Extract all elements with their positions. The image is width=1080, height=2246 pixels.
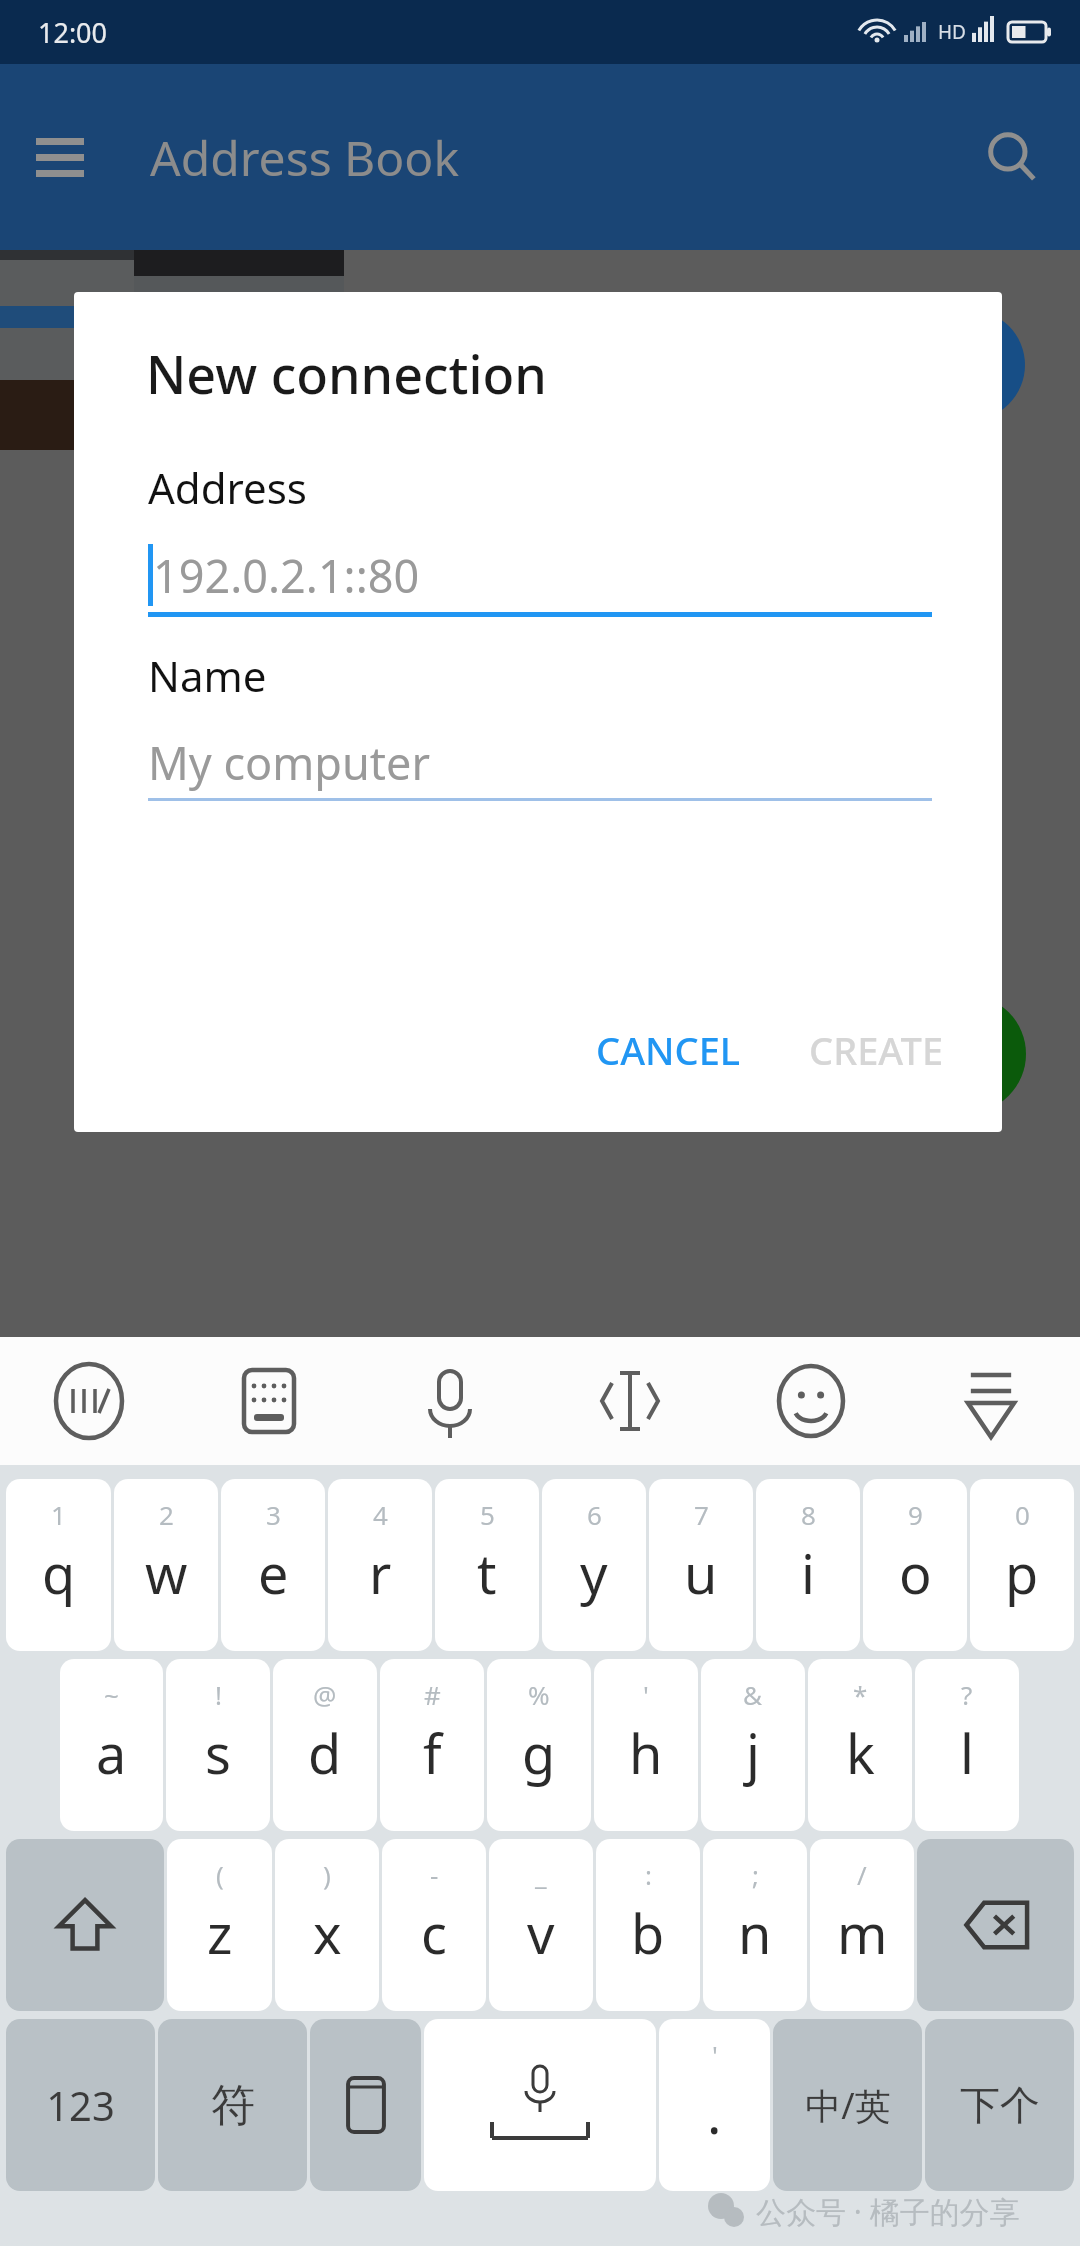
button[interactable]: Hide keyboard	[936, 1346, 1046, 1456]
staticText: @	[313, 1677, 337, 1712]
button[interactable]: %	[487, 1659, 591, 1831]
button[interactable]: (	[167, 1839, 272, 2011]
staticText: g	[522, 1716, 556, 1790]
button[interactable]: Emoji	[756, 1346, 866, 1456]
staticText: r	[369, 1536, 392, 1610]
staticText: 4	[373, 1497, 388, 1532]
staticText: j	[746, 1716, 760, 1790]
staticText: 9	[908, 1497, 923, 1532]
staticText: 123	[46, 2078, 115, 2132]
button[interactable]: 下个	[925, 2019, 1074, 2191]
button[interactable]: 0	[970, 1479, 1074, 1651]
button[interactable]: ;	[703, 1839, 807, 2011]
staticText: 192.0.2.1::80	[153, 545, 420, 606]
staticText: v	[527, 1896, 555, 1970]
button[interactable]: 7	[649, 1479, 753, 1651]
button[interactable]: '	[594, 1659, 698, 1831]
staticText: q	[42, 1536, 76, 1610]
staticText: 8	[801, 1497, 816, 1532]
staticText: z	[207, 1896, 233, 1970]
staticText: %	[528, 1677, 550, 1712]
button[interactable]: Add connection	[908, 995, 1026, 1113]
button[interactable]: Shift	[6, 1839, 164, 2011]
staticText: '	[712, 2037, 718, 2072]
button[interactable]: -	[382, 1839, 486, 2011]
button[interactable]: 1	[6, 1479, 111, 1651]
staticText: '	[643, 1677, 649, 1712]
staticText: c	[421, 1896, 447, 1970]
staticText: 公众号 · 橘子的分享	[756, 2191, 1020, 2232]
staticText: u	[684, 1536, 718, 1610]
staticText: 0	[1015, 1497, 1030, 1532]
staticText: 5	[480, 1497, 495, 1532]
button[interactable]: 9	[863, 1479, 967, 1651]
button[interactable]: @	[273, 1659, 377, 1831]
staticText: 2	[159, 1497, 174, 1532]
button[interactable]: Input method	[34, 1346, 144, 1456]
staticText: 7	[694, 1497, 709, 1532]
staticText: )	[323, 1857, 331, 1892]
staticText: b	[631, 1896, 665, 1970]
staticText: HD	[938, 19, 966, 45]
button[interactable]: Voice input	[395, 1346, 505, 1456]
staticText: New connection	[146, 338, 547, 409]
staticText: *	[853, 1677, 868, 1712]
staticText: &	[743, 1677, 763, 1712]
button[interactable]: 中/英	[773, 2019, 922, 2191]
staticText: 下个	[960, 2080, 1040, 2130]
button[interactable]: 2	[114, 1479, 218, 1651]
button[interactable]: 5	[435, 1479, 539, 1651]
staticText: ?	[961, 1677, 973, 1712]
staticText: Address	[148, 459, 307, 516]
button[interactable]: Keyboard layout	[214, 1346, 324, 1456]
button[interactable]: Language	[310, 2019, 421, 2191]
button[interactable]: Edit cursor	[575, 1346, 685, 1456]
button[interactable]: #	[380, 1659, 484, 1831]
staticText: w	[145, 1536, 188, 1610]
button[interactable]: CREATE	[785, 1006, 968, 1094]
staticText: ;	[752, 1857, 759, 1892]
staticText: e	[258, 1536, 289, 1610]
staticText: .	[707, 2076, 722, 2150]
staticText: 1	[51, 1497, 66, 1532]
button[interactable]: 8	[756, 1479, 860, 1651]
staticText: h	[629, 1716, 663, 1790]
button[interactable]: ~	[60, 1659, 163, 1831]
staticText: Address Book	[150, 125, 460, 190]
staticText: o	[899, 1536, 932, 1610]
button[interactable]: Menu	[24, 121, 96, 193]
button[interactable]: 符	[158, 2019, 307, 2191]
button[interactable]: /	[810, 1839, 914, 2011]
button[interactable]: Space	[424, 2019, 656, 2191]
staticText: _	[535, 1857, 547, 1892]
staticText: y	[580, 1536, 608, 1610]
button[interactable]: 6	[542, 1479, 646, 1651]
button[interactable]: )	[275, 1839, 379, 2011]
staticText: 6	[587, 1497, 602, 1532]
button[interactable]: :	[596, 1839, 700, 2011]
button[interactable]: 4	[328, 1479, 432, 1651]
button[interactable]: !	[166, 1659, 270, 1831]
button[interactable]: 3	[221, 1479, 325, 1651]
staticText: CREATE	[809, 1024, 944, 1076]
staticText: ~	[104, 1677, 119, 1712]
staticText: 中/英	[805, 2081, 891, 2130]
button[interactable]: '	[659, 2019, 770, 2191]
button[interactable]: &	[701, 1659, 805, 1831]
staticText: Name	[148, 647, 267, 704]
button[interactable]: *	[808, 1659, 912, 1831]
staticText: k	[846, 1716, 875, 1790]
staticText: a	[96, 1716, 127, 1790]
staticText: 12:00	[38, 14, 108, 51]
button[interactable]: Backspace	[917, 1839, 1074, 2011]
button[interactable]: _	[489, 1839, 593, 2011]
staticText: s	[205, 1716, 231, 1790]
button[interactable]: Search	[976, 121, 1048, 193]
staticText: p	[1005, 1536, 1039, 1610]
staticText: m	[837, 1896, 888, 1970]
staticText: #	[424, 1677, 441, 1712]
button[interactable]: ?	[915, 1659, 1019, 1831]
button[interactable]: 123	[6, 2019, 155, 2191]
staticText: x	[313, 1896, 342, 1970]
button[interactable]: CANCEL	[572, 1006, 765, 1094]
